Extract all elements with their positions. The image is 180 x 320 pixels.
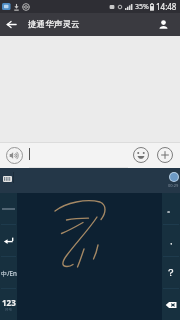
button[interactable]: Voice settings	[169, 172, 179, 182]
button[interactable]: Space	[0, 193, 17, 224]
button[interactable]: Back	[0, 13, 22, 36]
button[interactable]: ，	[162, 225, 180, 256]
staticText: ？	[166, 266, 176, 279]
button[interactable]: Enter	[0, 225, 17, 256]
button[interactable]: 中/En	[0, 257, 17, 288]
button[interactable]: 123	[0, 289, 17, 320]
button[interactable]: 。	[162, 193, 180, 224]
button[interactable]: ？	[162, 257, 180, 288]
staticText: 14:48	[156, 1, 177, 12]
staticText: 符号	[5, 308, 13, 313]
staticText: 00:29	[168, 183, 179, 188]
button[interactable]: Backspace	[162, 289, 180, 320]
button[interactable]: Switch keyboard	[3, 175, 12, 183]
button[interactable]: Emoji	[132, 146, 150, 164]
staticText: 中/En	[1, 269, 17, 277]
staticText: 123	[2, 297, 16, 308]
staticText: 35%	[135, 2, 149, 12]
button[interactable]: Contact profile	[151, 13, 175, 36]
button[interactable]: Voice input	[5, 146, 23, 164]
staticText: 。	[167, 204, 175, 214]
staticText: ，	[167, 236, 175, 246]
button[interactable]: Add	[156, 146, 174, 164]
staticText: 捷通华声灵云	[28, 19, 80, 30]
